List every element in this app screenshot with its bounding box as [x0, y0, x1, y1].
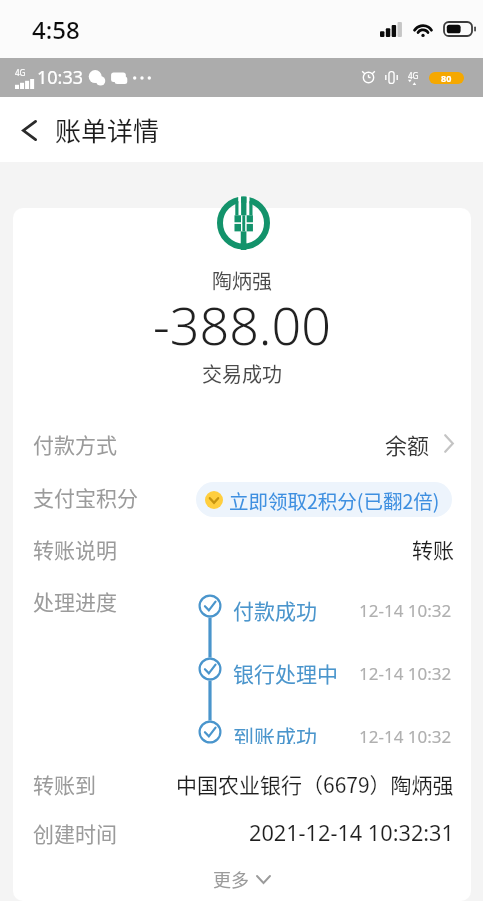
staticText: 立即领取2积分(已翻2倍)	[229, 486, 440, 514]
staticText: 4G	[408, 70, 419, 81]
staticText: 10:33	[37, 65, 84, 90]
staticText: 2021-12-14 10:32:31	[249, 818, 454, 848]
staticText: 支付宝积分	[33, 482, 138, 512]
staticText: 陶炳强	[212, 266, 272, 295]
staticText: 中国农业银行（6679）陶炳强	[176, 769, 454, 799]
button[interactable]: 付款方式	[13, 417, 471, 470]
staticText: 余额	[385, 428, 430, 460]
button[interactable]: 转账到	[13, 759, 471, 808]
staticText: 转账说明	[33, 534, 117, 564]
staticText: -388.00	[153, 289, 331, 360]
staticText: 付款成功	[233, 595, 317, 625]
button[interactable]: Back	[3, 104, 55, 156]
button[interactable]: 转账说明	[13, 523, 471, 575]
staticText: 付款方式	[33, 429, 117, 459]
button[interactable]: 立即领取2积分(已翻2倍)	[196, 482, 452, 517]
staticText: 到账成功	[233, 721, 317, 744]
staticText: 银行处理中	[233, 658, 338, 688]
staticText: 4:58	[32, 13, 80, 46]
staticText: 更多	[213, 866, 249, 892]
staticText: 12-14 10:32	[359, 599, 452, 622]
staticText: 账单详情	[55, 111, 160, 149]
staticText: 转账	[412, 534, 454, 564]
staticText: 创建时间	[33, 818, 117, 848]
staticText: 80	[441, 72, 452, 84]
button[interactable]: 创建时间	[13, 808, 471, 857]
button[interactable]: 更多	[13, 857, 471, 901]
staticText: 处理进度	[33, 586, 117, 616]
staticText: 12-14 10:32	[359, 662, 452, 685]
staticText: 转账到	[33, 769, 96, 799]
staticText: 交易成功	[202, 359, 282, 388]
staticText: 12-14 10:32	[359, 725, 452, 744]
staticText: 4G	[15, 67, 26, 78]
